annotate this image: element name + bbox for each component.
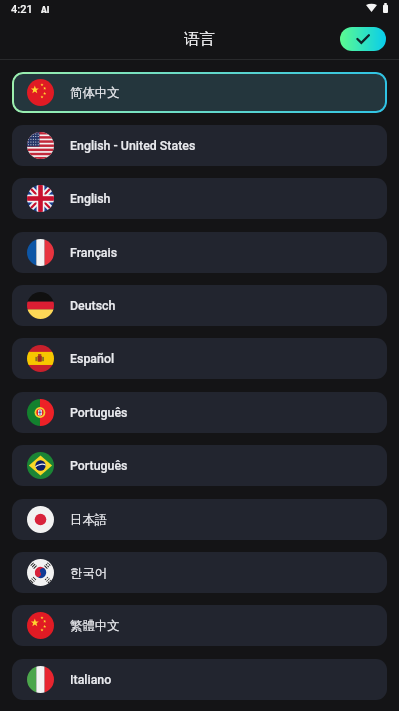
button[interactable]: Deutsch: [12, 285, 387, 326]
staticText: 日本語: [70, 512, 108, 528]
staticText: 简体中文: [70, 85, 120, 101]
staticText: Italiano: [70, 672, 112, 687]
button[interactable]: Português: [12, 392, 387, 433]
button[interactable]: Italiano: [12, 659, 387, 700]
button[interactable]: Português: [12, 445, 387, 486]
button[interactable]: 日本語: [12, 499, 387, 540]
button[interactable]: 简体中文: [12, 72, 387, 113]
staticText: 4:21: [11, 3, 33, 16]
button[interactable]: English: [12, 178, 387, 219]
staticText: 语言: [184, 29, 215, 49]
button[interactable]: English - United States: [12, 125, 387, 166]
staticText: Español: [70, 351, 115, 366]
button[interactable]: Español: [12, 338, 387, 379]
staticText: English - United States: [70, 138, 196, 153]
staticText: 繁體中文: [70, 618, 120, 634]
button[interactable]: 한국어: [12, 552, 387, 593]
button[interactable]: Confirm selection: [340, 27, 386, 51]
staticText: Français: [70, 245, 118, 260]
staticText: Deutsch: [70, 298, 116, 313]
staticText: English: [70, 191, 111, 206]
staticText: 한국어: [70, 565, 108, 581]
button[interactable]: Français: [12, 232, 387, 273]
staticText: Português: [70, 405, 128, 420]
button[interactable]: 繁體中文: [12, 605, 387, 646]
staticText: AI: [41, 5, 50, 15]
staticText: Português: [70, 458, 128, 473]
